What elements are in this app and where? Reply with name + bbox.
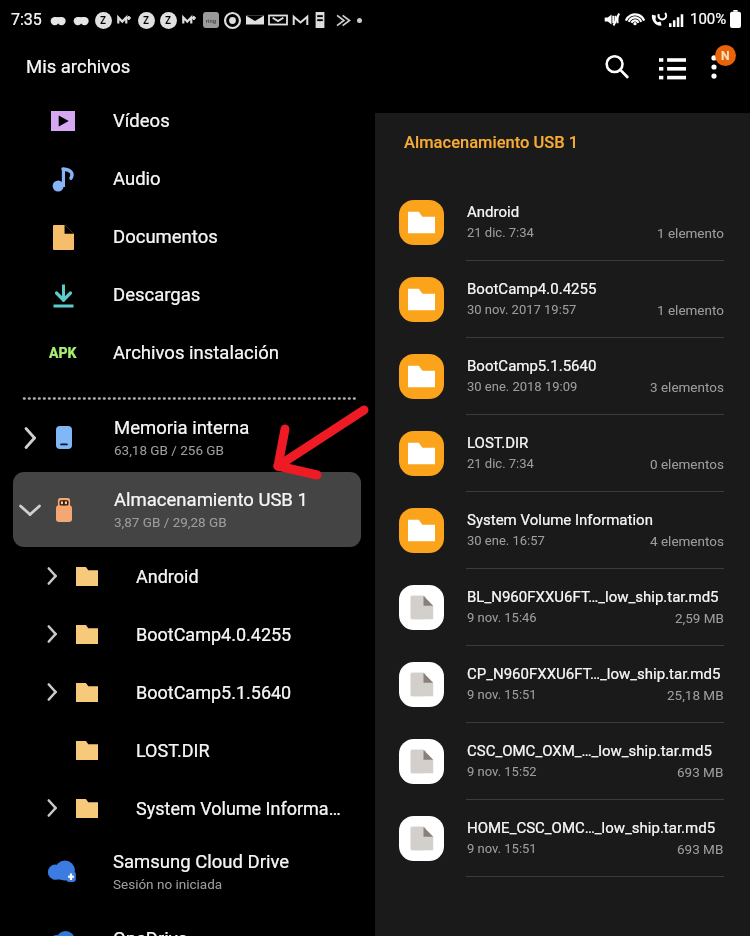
button[interactable]: Almacenamiento USB 1 [13,472,361,547]
staticText: 21 dic. 7:34 [467,225,534,240]
staticText: Vídeos [113,110,170,132]
button[interactable]: Samsung Cloud Drive [0,834,375,908]
staticText: Sesión no iniciada [113,876,223,892]
button[interactable]: OneDrive [0,902,375,936]
staticText: System Volume Informa… [136,798,341,819]
staticText: 9 nov. 15:46 [467,610,537,625]
staticText: LOST.DIR [467,434,529,452]
staticText: 3 elementos [650,379,724,395]
staticText: 9 nov. 15:52 [467,764,537,779]
staticText: BootCamp4.0.4255 [136,624,292,645]
staticText: APK [49,345,77,361]
button[interactable]: HOME_CSC_OMC…_low_ship.tar.md5 [375,800,750,877]
staticText: Z [165,15,172,27]
button[interactable]: More options [691,38,737,95]
staticText: 30 ene. 2018 19:09 [467,379,578,394]
staticText: 693 MB [677,841,724,857]
staticText: 9 nov. 15:51 [467,687,537,702]
button[interactable]: APK [0,324,375,382]
staticText: 1 elemento [657,225,724,241]
staticText: BL_N960FXXU6FT…_low_ship.tar.md5 [467,588,719,606]
button[interactable]: View as list [646,38,699,95]
staticText: OneDrive [113,928,188,936]
button[interactable]: CP_N960FXXU6FT…_low_ship.tar.md5 [375,646,750,723]
staticText: Android [136,566,199,587]
staticText: Almacenamiento USB 1 [114,489,308,511]
button[interactable]: CSC_OMC_OXM_…_low_ship.tar.md5 [375,723,750,800]
staticText: CSC_OMC_OXM_…_low_ship.tar.md5 [467,742,712,760]
button[interactable]: BootCamp5.1.5640 [375,338,750,415]
button[interactable]: Memoria interna [13,400,361,475]
staticText: Z [143,15,150,27]
button[interactable]: Descargas [0,266,375,324]
staticText: 30 ene. 16:57 [467,533,545,548]
staticText: 100% [690,10,727,28]
staticText: Almacenamiento USB 1 [404,133,579,152]
staticText: LOST.DIR [136,740,210,761]
staticText: Descargas [113,284,201,306]
button[interactable]: LOST.DIR [375,415,750,492]
staticText: Android [467,203,520,221]
staticText: CP_N960FXXU6FT…_low_ship.tar.md5 [467,665,721,683]
staticText: 4 elementos [650,533,724,549]
staticText: 2,59 MB [675,610,724,626]
staticText: Z [100,15,107,27]
staticText: 25,18 MB [667,687,724,703]
staticText: ring [206,17,217,24]
button[interactable]: Documentos [0,208,375,266]
button[interactable]: Android [375,184,750,261]
button[interactable]: Search [590,38,643,95]
button[interactable]: Audio [0,150,375,208]
button[interactable]: BootCamp4.0.4255 [0,605,375,663]
button[interactable]: BootCamp4.0.4255 [375,261,750,338]
staticText: N [721,49,730,63]
staticText: 21 dic. 7:34 [467,456,534,471]
staticText: 1 elemento [657,302,724,318]
staticText: System Volume Information [467,511,653,529]
staticText: Archivos instalación [113,342,279,364]
button[interactable]: LOST.DIR [0,721,375,779]
staticText: 693 MB [677,764,724,780]
button[interactable]: BL_N960FXXU6FT…_low_ship.tar.md5 [375,569,750,646]
staticText: Documentos [113,226,218,248]
staticText: HOME_CSC_OMC…_low_ship.tar.md5 [467,819,716,837]
staticText: 30 nov. 2017 19:57 [467,302,577,317]
button[interactable]: System Volume Informa… [0,779,375,837]
staticText: Mis archivos [26,56,131,78]
button[interactable]: Vídeos [0,92,375,150]
staticText: 7:35 [11,10,42,29]
staticText: Samsung Cloud Drive [113,851,290,873]
button[interactable]: Android [0,547,375,605]
staticText: 9 nov. 15:51 [467,841,537,856]
staticText: Memoria interna [114,417,250,439]
staticText: 63,18 GB / 256 GB [114,442,224,458]
button[interactable]: System Volume Information [375,492,750,569]
staticText: 3,87 GB / 29,28 GB [114,514,227,530]
staticText: 0 elementos [650,456,724,472]
staticText: BootCamp4.0.4255 [467,280,597,298]
staticText: BootCamp5.1.5640 [467,357,597,375]
staticText: BootCamp5.1.5640 [136,682,292,703]
button[interactable]: BootCamp5.1.5640 [0,663,375,721]
staticText: Audio [113,168,161,190]
